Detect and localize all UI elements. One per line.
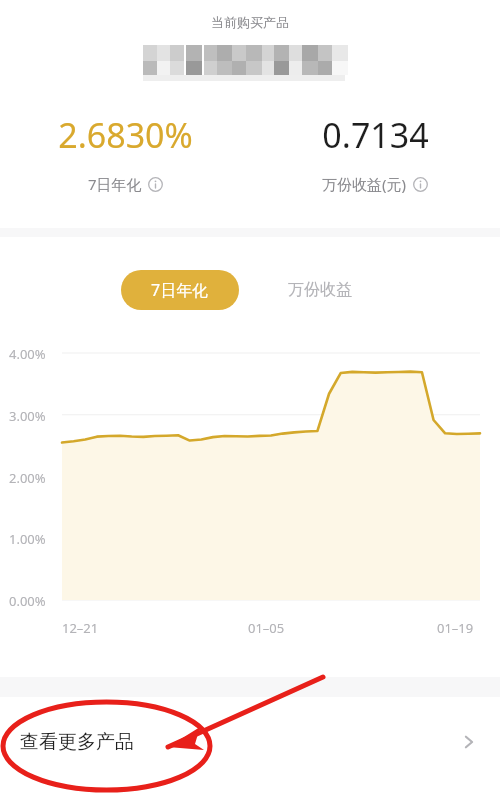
staticText: 万份收益(元): [322, 174, 407, 194]
staticText: 2.6830%: [58, 112, 193, 158]
staticText: 当前购买产品: [211, 14, 289, 30]
staticText: 2.00%: [9, 469, 46, 487]
staticText: 01–05: [248, 619, 285, 637]
button[interactable]: 0.7134: [250, 112, 500, 194]
other: More products: [458, 731, 480, 753]
button[interactable]: 2.6830%: [0, 112, 250, 194]
staticText: 7日年化: [88, 174, 142, 194]
staticText: 0.00%: [9, 592, 46, 610]
staticText: 4.00%: [9, 345, 46, 363]
button[interactable]: 7日年化: [121, 270, 239, 310]
button[interactable]: 万份收益: [261, 270, 379, 310]
staticText: 3.00%: [9, 407, 46, 425]
staticText: 查看更多产品: [20, 730, 134, 754]
staticText: 12–21: [62, 619, 99, 637]
staticText: 万份收益: [288, 280, 352, 300]
staticText: 0.7134: [322, 112, 429, 158]
button[interactable]: 查看更多产品: [0, 697, 500, 787]
staticText: 7日年化: [151, 279, 209, 301]
staticText: 01–19: [437, 619, 474, 637]
staticText: 1.00%: [9, 530, 46, 548]
